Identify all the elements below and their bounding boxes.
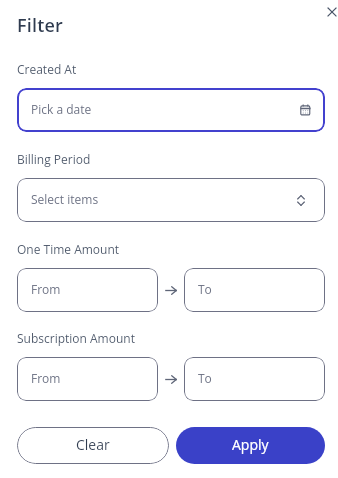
button[interactable]: From bbox=[17, 268, 158, 312]
staticText: Pick a date bbox=[31, 101, 300, 117]
button[interactable]: Close bbox=[321, 1, 338, 23]
staticText: Filter bbox=[17, 13, 64, 38]
staticText: Billing Period bbox=[17, 151, 91, 167]
staticText: To bbox=[198, 370, 311, 386]
staticText: Subscription Amount bbox=[17, 330, 135, 346]
button[interactable]: To bbox=[184, 268, 325, 312]
button[interactable]: From bbox=[17, 357, 158, 401]
staticText: Created At bbox=[17, 61, 77, 77]
button[interactable]: Select items bbox=[17, 178, 325, 222]
staticText: From bbox=[31, 370, 144, 386]
staticText: To bbox=[198, 281, 311, 297]
staticText: Select items bbox=[31, 191, 297, 207]
staticText: One Time Amount bbox=[17, 241, 120, 257]
button[interactable]: Clear bbox=[17, 427, 169, 464]
button[interactable]: Pick a date bbox=[17, 88, 325, 132]
staticText: Apply bbox=[232, 435, 269, 454]
staticText: Clear bbox=[76, 435, 110, 454]
button[interactable]: To bbox=[184, 357, 325, 401]
button[interactable]: Apply bbox=[176, 427, 325, 464]
staticText: From bbox=[31, 281, 144, 297]
